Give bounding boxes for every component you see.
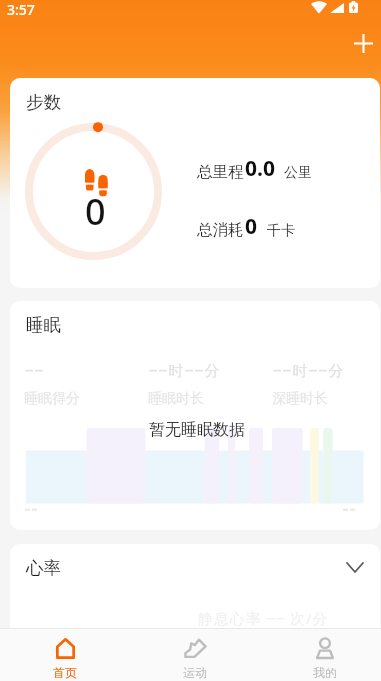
button[interactable]: 心率 — [10, 544, 380, 591]
staticText: 暂无睡眠数据 — [149, 420, 245, 440]
staticText: 静息心率 ‒‒ 次/分 — [198, 608, 329, 628]
staticText: ‒‒ — [25, 360, 45, 380]
staticText: 睡眠 — [26, 314, 61, 336]
button[interactable]: 首页 — [0, 629, 130, 681]
button[interactable]: 运动 — [130, 629, 260, 681]
staticText: 心率 — [26, 557, 61, 579]
staticText: 睡眠得分 — [24, 390, 80, 408]
staticText: 步数 — [26, 91, 61, 113]
button[interactable]: 我的 — [260, 629, 381, 681]
staticText: 公里 — [284, 164, 312, 182]
staticText: 我的 — [313, 665, 337, 680]
staticText: 0 — [245, 212, 258, 241]
staticText: 0.0 — [245, 154, 275, 183]
staticText: 总消耗 — [197, 220, 244, 240]
staticText: 3:57 — [7, 0, 35, 16]
staticText: 首页 — [53, 665, 77, 680]
staticText: ‒‒时‒‒分 — [149, 360, 221, 380]
staticText: 0 — [85, 187, 106, 236]
staticText: 千卡 — [267, 222, 295, 240]
staticText: 总里程 — [197, 162, 244, 182]
staticText: ‒‒时‒‒分 — [273, 360, 345, 380]
staticText: 运动 — [183, 665, 207, 680]
button[interactable]: Add — [343, 23, 381, 63]
staticText: 深睡时长 — [272, 390, 328, 408]
staticText: 睡眠时长 — [148, 390, 204, 408]
